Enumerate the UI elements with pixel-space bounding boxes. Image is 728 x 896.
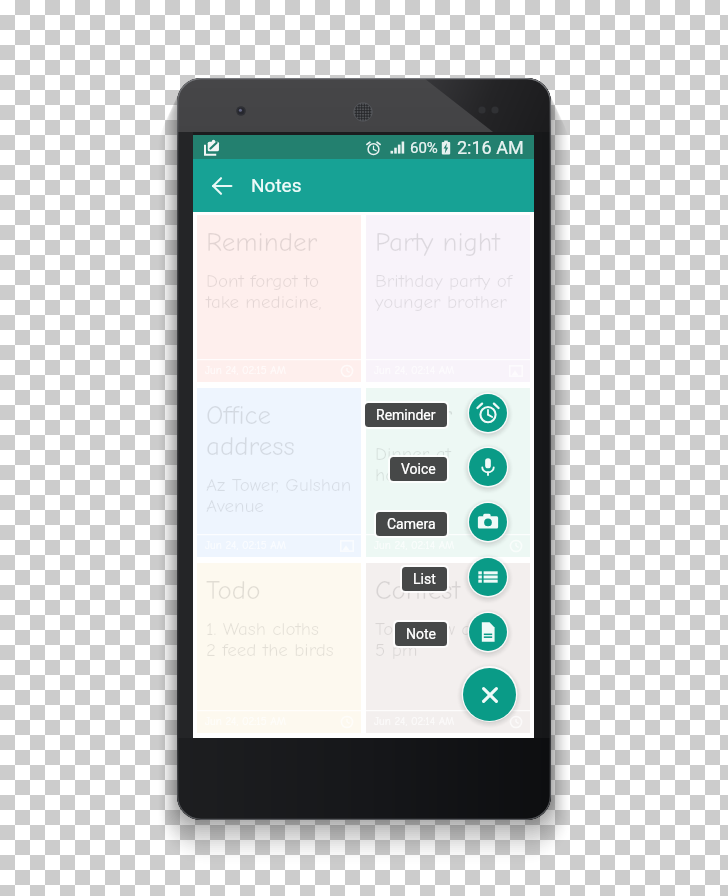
button[interactable]: Note	[395, 622, 447, 646]
staticText: Reminder	[376, 407, 436, 423]
staticText: Az Tower, Gulshan Avenue	[206, 474, 356, 517]
button[interactable]: Note	[469, 613, 507, 651]
staticText: Notes	[251, 174, 302, 196]
button[interactable]: Dinner	[366, 388, 530, 557]
button[interactable]: Contest	[366, 563, 530, 733]
staticText: 60%	[410, 139, 438, 157]
staticText: Party night	[375, 227, 501, 258]
staticText: Brithday party of younger brother	[375, 270, 525, 313]
staticText: Todo	[206, 575, 261, 606]
staticText: List	[413, 571, 436, 587]
button[interactable]: Close menu	[463, 668, 516, 721]
button[interactable]: List	[469, 558, 507, 596]
button[interactable]: Back	[202, 166, 242, 206]
staticText: 2:16 AM	[457, 137, 524, 158]
button[interactable]: Office address	[197, 388, 361, 557]
button[interactable]: Camera	[469, 503, 507, 541]
button[interactable]: Party night	[366, 215, 530, 382]
staticText: Camera	[387, 516, 436, 532]
button[interactable]: Camera	[376, 512, 447, 536]
staticText: Jun 24, 02:14 AM	[374, 715, 455, 728]
staticText: Office address	[206, 400, 356, 462]
staticText: Jun 24, 02:15 AM	[205, 539, 286, 552]
button[interactable]: Reminder	[365, 403, 447, 427]
button[interactable]: Todo	[197, 563, 361, 733]
staticText: Jun 24, 02:14 AM	[374, 539, 455, 552]
button[interactable]: Voice	[469, 448, 507, 486]
staticText: Contest	[375, 575, 461, 606]
staticText: Jun 24, 02:15 AM	[205, 715, 286, 728]
staticText: Voice	[401, 461, 436, 477]
button[interactable]: List	[402, 567, 447, 591]
button[interactable]: Reminder	[469, 394, 507, 432]
staticText: Reminder	[206, 227, 318, 258]
button[interactable]: Reminder	[197, 215, 361, 382]
staticText: Dont forgot to take medicine,	[206, 270, 356, 313]
button[interactable]: Voice	[390, 457, 447, 481]
staticText: Dinner	[375, 400, 453, 431]
staticText: 1. Wash cloths 2 feed the birds	[206, 618, 334, 661]
staticText: Jun 24, 02:15 AM	[205, 364, 286, 377]
staticText: Dinner at home	[375, 443, 451, 486]
staticText: Tomorrow at 5 pm	[375, 618, 477, 661]
staticText: Note	[406, 626, 436, 642]
